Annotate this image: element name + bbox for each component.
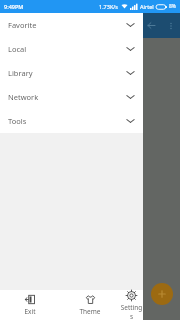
- staticText: 9:49PM: [4, 3, 24, 10]
- button[interactable]: Settings: [120, 290, 143, 320]
- staticText: Library: [8, 68, 33, 78]
- button[interactable]: Back: [146, 20, 157, 31]
- staticText: Airtel: [140, 3, 154, 10]
- button[interactable]: Network: [0, 85, 143, 109]
- staticText: Tools: [8, 116, 27, 126]
- button[interactable]: More options: [166, 21, 176, 31]
- button[interactable]: Add: [151, 283, 173, 305]
- button[interactable]: Tools: [0, 109, 143, 133]
- staticText: Favorite: [8, 20, 37, 30]
- button[interactable]: Library: [0, 61, 143, 85]
- staticText: Settings: [120, 303, 143, 320]
- button[interactable]: Local: [0, 37, 143, 61]
- staticText: 8%: [169, 3, 177, 10]
- staticText: Theme: [79, 307, 101, 316]
- button[interactable]: Exit: [0, 290, 60, 320]
- staticText: 1.73K/s: [99, 3, 118, 10]
- staticText: Local: [8, 44, 27, 54]
- staticText: Exit: [24, 307, 36, 316]
- staticText: Network: [8, 92, 39, 102]
- button[interactable]: Favorite: [0, 13, 143, 37]
- button[interactable]: Theme: [60, 290, 120, 320]
